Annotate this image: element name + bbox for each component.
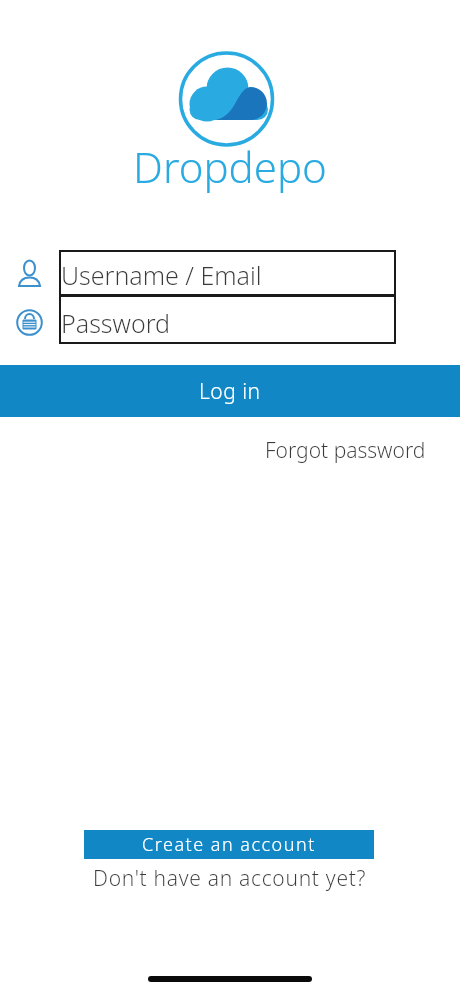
staticText: Forgot password bbox=[265, 436, 426, 465]
button[interactable]: Create an account bbox=[84, 830, 374, 859]
staticText: Log in bbox=[199, 377, 261, 406]
staticText: Username / Email bbox=[61, 258, 398, 302]
staticText: Create an account bbox=[142, 832, 316, 857]
button[interactable]: Forgot password bbox=[250, 435, 426, 465]
button[interactable]: Username / Email bbox=[59, 250, 396, 294]
staticText: Dropdepo bbox=[0, 138, 460, 222]
staticText: Password bbox=[61, 306, 398, 353]
staticText: Don't have an account yet? bbox=[93, 864, 367, 893]
button[interactable]: Log in bbox=[0, 365, 460, 417]
button[interactable]: Password bbox=[59, 297, 396, 344]
